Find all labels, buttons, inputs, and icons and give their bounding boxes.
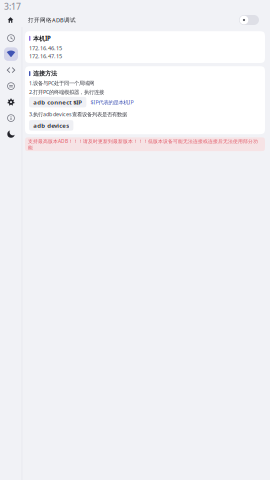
staticText: 3:17	[4, 1, 21, 12]
staticText: 打开网络ADB调试	[28, 16, 76, 24]
staticText: 本机IP	[33, 34, 51, 43]
button[interactable]: Settings	[0, 95, 21, 110]
button[interactable]: Appearance	[0, 127, 21, 142]
staticText: 连接方法	[33, 70, 57, 77]
staticText: 2.打开PC的终端模拟器，执行连接	[29, 88, 104, 96]
staticText: 1.设备与PC处于同一个局域网	[29, 79, 94, 87]
button[interactable]: Logs	[0, 79, 21, 94]
button[interactable]: Developer tools	[0, 63, 21, 78]
button[interactable]: Home	[0, 13, 21, 27]
staticText: 3.执行adb devices查看设备列表是否有数据	[29, 111, 127, 118]
button[interactable]: History	[0, 31, 21, 46]
staticText: 172.16.47.15	[29, 52, 62, 60]
staticText: adb connect $IP	[33, 98, 82, 106]
staticText: 支持最高版本ADB！！！请及时更新到最新版本！！！低版本设备可能无法连接或连接后…	[28, 138, 258, 151]
staticText: $IP代表的是本机IP	[90, 98, 133, 106]
button[interactable]: About	[0, 111, 21, 126]
staticText: adb devices	[33, 121, 69, 129]
staticText: 172.16.46.15	[29, 44, 62, 52]
button[interactable]: Enable network ADB	[239, 13, 265, 27]
button[interactable]: Network ADB	[0, 47, 21, 62]
